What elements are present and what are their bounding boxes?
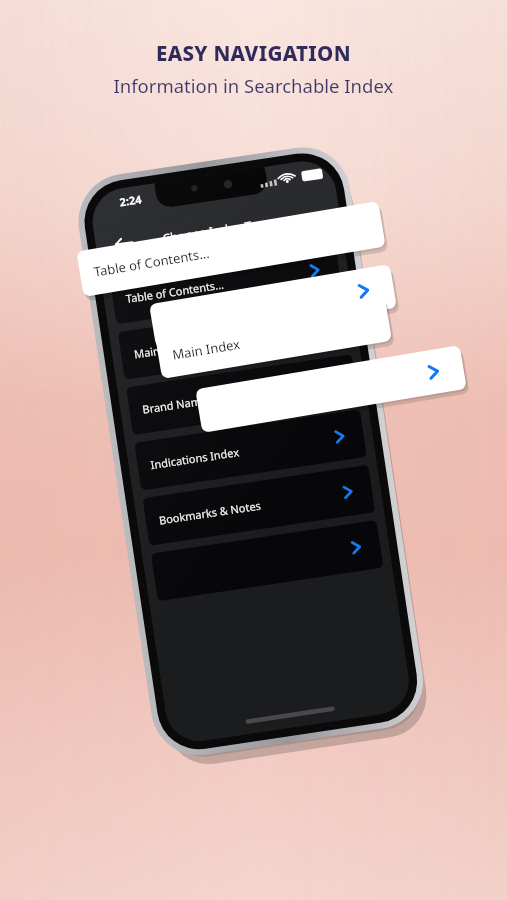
button[interactable] (78, 226, 383, 272)
button[interactable]: Open (151, 284, 394, 328)
button[interactable] (132, 530, 372, 574)
button[interactable] (136, 478, 376, 522)
button[interactable] (140, 425, 380, 469)
button[interactable]: Back (188, 214, 210, 236)
button[interactable] (157, 316, 389, 360)
button[interactable]: Open (196, 367, 464, 411)
